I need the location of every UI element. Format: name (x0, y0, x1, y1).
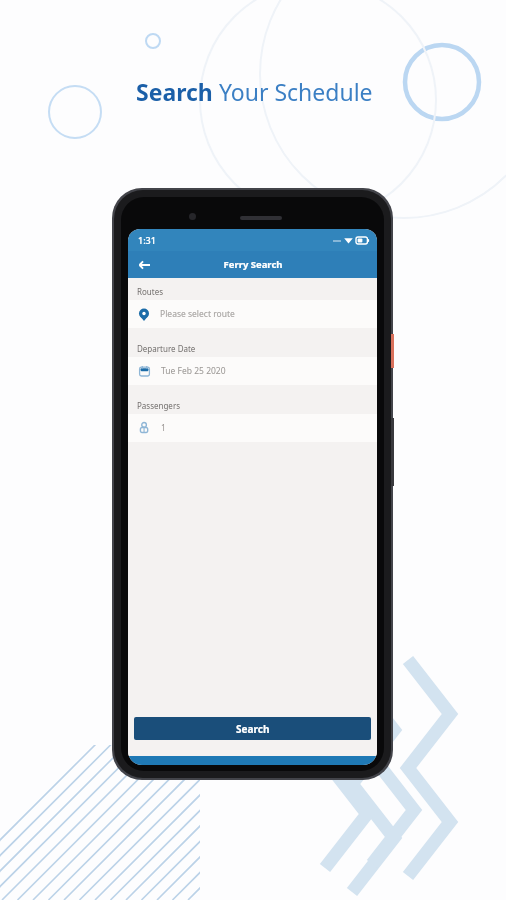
staticText: 1 (161, 422, 166, 434)
staticText: Please select route (160, 308, 235, 320)
staticText: Passengers (137, 400, 181, 411)
button[interactable]: 1 (128, 414, 377, 442)
staticText: Search (236, 722, 270, 736)
staticText: 1:31 (138, 234, 156, 246)
staticText: Search (136, 76, 213, 107)
staticText: Tue Feb 25 2020 (161, 365, 226, 377)
staticText: Departure Date (137, 343, 196, 354)
button[interactable]: Please select route (128, 300, 377, 328)
button[interactable]: Tue Feb 25 2020 (128, 357, 377, 385)
staticText: Routes (137, 286, 163, 297)
button[interactable]: Search (134, 717, 371, 740)
staticText: Ferry Search (223, 258, 283, 271)
button[interactable]: Back (134, 255, 154, 275)
staticText: Your Schedule (213, 76, 373, 107)
